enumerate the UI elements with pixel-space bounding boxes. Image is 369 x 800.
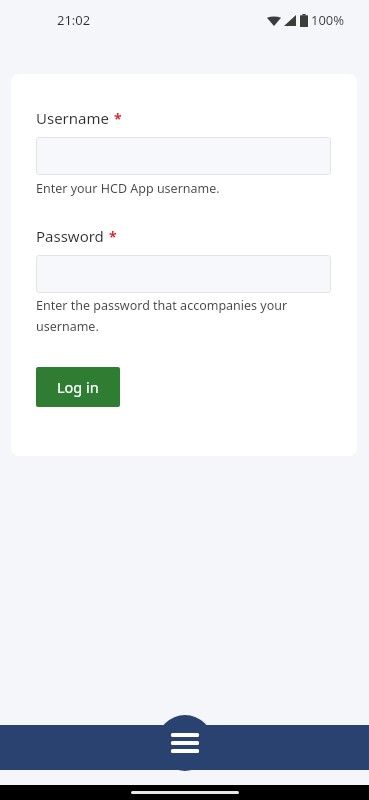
staticText: 21:02 [57, 11, 91, 29]
staticText: 100% [311, 11, 345, 29]
staticText: * [109, 227, 117, 246]
button[interactable]: Log in [36, 367, 120, 407]
button[interactable] [36, 255, 331, 293]
button[interactable] [36, 137, 331, 175]
staticText: Enter the password that accompanies your… [36, 297, 331, 335]
staticText: Log in [57, 377, 99, 397]
staticText: * [114, 109, 122, 128]
staticText: Enter your HCD App username. [36, 180, 220, 197]
staticText: Password [36, 226, 104, 246]
button[interactable]: Open menu [157, 715, 213, 771]
staticText: Username [36, 108, 109, 128]
